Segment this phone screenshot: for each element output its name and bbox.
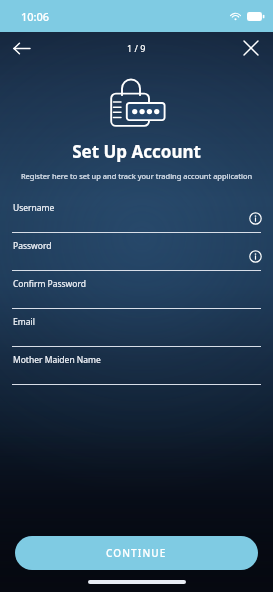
button[interactable]: Back <box>6 33 36 63</box>
button[interactable]: CONTINUE <box>15 536 258 570</box>
button[interactable]: Email <box>0 309 273 347</box>
button[interactable]: Mother Maiden Name <box>0 347 273 385</box>
staticText: Mother Maiden Name <box>13 354 101 366</box>
button[interactable]: Username <box>0 195 273 233</box>
other: Info <box>249 250 262 263</box>
staticText: Register here to set up and track your t… <box>8 171 265 181</box>
button[interactable]: Confirm Password <box>0 271 273 309</box>
staticText: CONTINUE <box>106 546 167 560</box>
staticText: Email <box>13 316 35 328</box>
staticText: 10:06 <box>21 9 50 24</box>
other: Info <box>249 212 262 225</box>
button[interactable]: Password <box>0 233 273 271</box>
staticText: Set Up Account <box>0 140 273 163</box>
staticText: Username <box>13 202 55 214</box>
staticText: Confirm Password <box>13 278 86 290</box>
staticText: 1 / 9 <box>127 42 146 54</box>
button[interactable]: Close <box>236 33 266 63</box>
staticText: Password <box>13 240 52 252</box>
